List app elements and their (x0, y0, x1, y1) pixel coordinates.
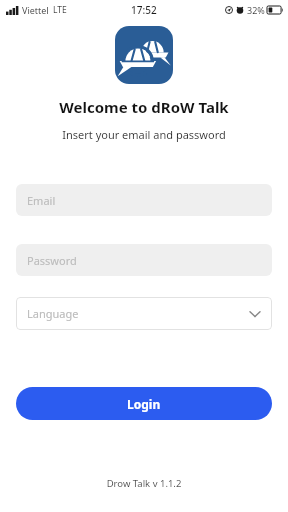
staticText: 17:52 (131, 3, 157, 17)
button[interactable]: Login (16, 387, 272, 420)
staticText: Welcome to dRoW Talk (0, 97, 288, 117)
staticText: Login (127, 396, 161, 412)
staticText: Language (27, 306, 79, 321)
staticText: Insert your email and password (0, 127, 288, 142)
staticText: 32% (247, 4, 265, 16)
staticText: Viettel (22, 4, 49, 16)
staticText: Password (27, 253, 77, 268)
button[interactable]: Password (16, 244, 272, 276)
other: Open language list (250, 311, 260, 317)
staticText: LTE (53, 4, 67, 16)
button[interactable]: Language (16, 297, 272, 330)
button[interactable]: Email (16, 184, 272, 216)
staticText: Drow Talk v 1.1.2 (0, 477, 288, 490)
staticText: Email (27, 193, 56, 208)
